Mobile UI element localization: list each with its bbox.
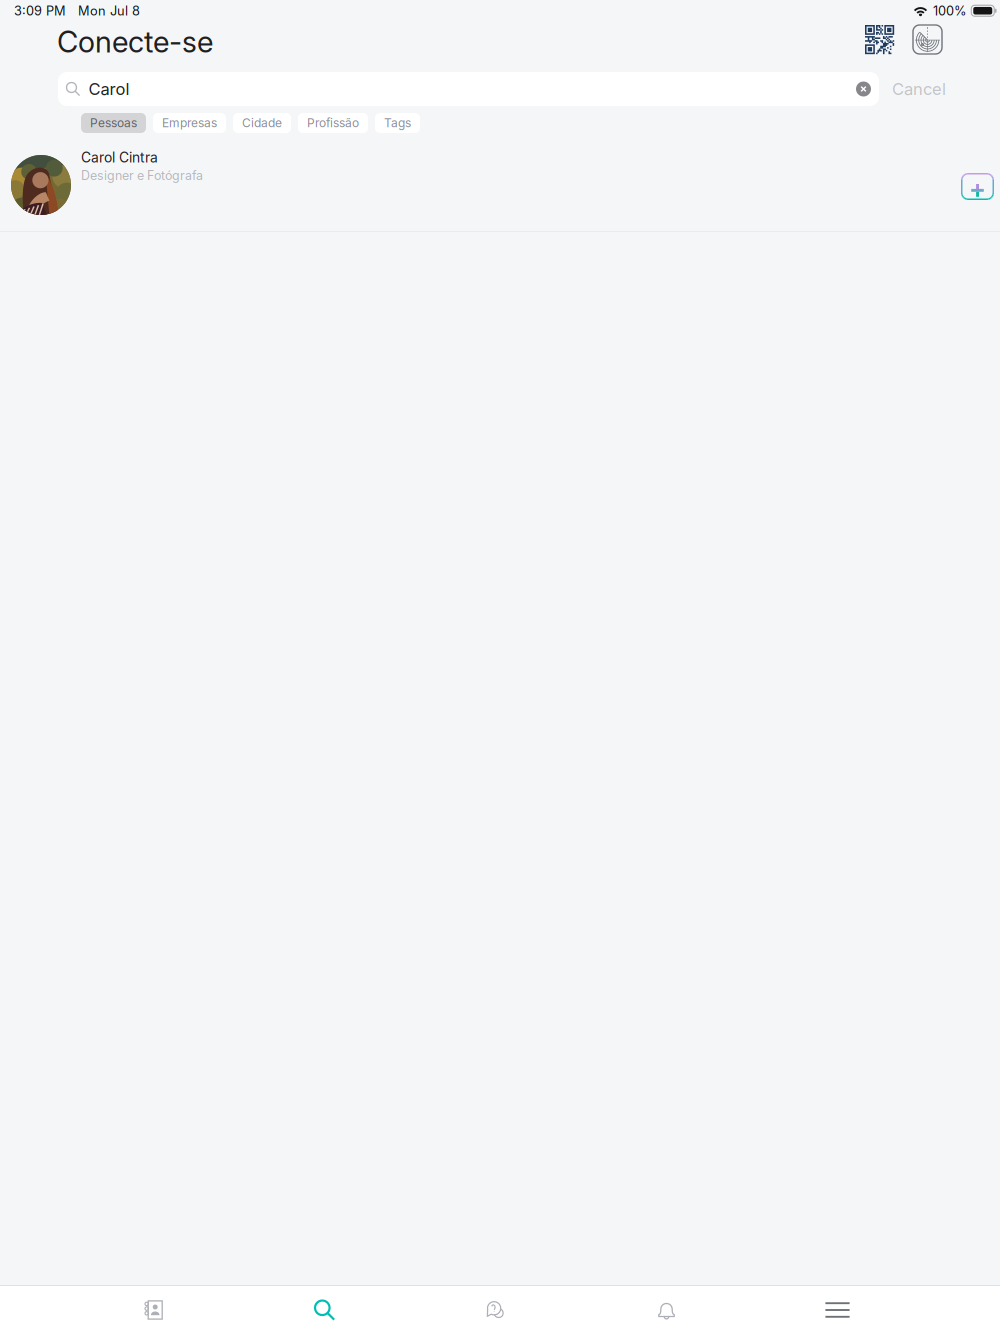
- button[interactable]: Profissão: [298, 113, 368, 133]
- staticText: Carol: [88, 79, 129, 99]
- button[interactable]: Carol Cintra: [0, 141, 1000, 232]
- button[interactable]: Empresas: [153, 113, 226, 133]
- button[interactable]: Tags: [375, 113, 420, 133]
- button[interactable]: Cidade: [233, 113, 291, 133]
- staticText: Empresas: [162, 116, 217, 130]
- staticText: Carol Cintra: [81, 149, 158, 166]
- button[interactable]: Add Carol Cintra: [961, 173, 994, 200]
- button[interactable]: Scan QR code: [865, 25, 894, 54]
- button[interactable]: Pessoas: [81, 113, 146, 133]
- staticText: Conecte-se: [57, 24, 213, 59]
- staticText: 100%: [933, 3, 967, 18]
- button[interactable]: Find people nearby: [913, 25, 942, 54]
- button[interactable]: Notifications: [581, 1286, 752, 1334]
- staticText: Cancel: [892, 79, 946, 99]
- staticText: Cidade: [242, 116, 282, 130]
- button[interactable]: Search: [239, 1286, 410, 1334]
- button[interactable]: Help: [410, 1286, 581, 1334]
- staticText: Designer e Fotógrafa: [81, 168, 203, 183]
- button[interactable]: Contacts: [68, 1286, 239, 1334]
- staticText: 3:09 PM: [14, 3, 66, 18]
- staticText: Pessoas: [90, 116, 137, 130]
- staticText: Mon Jul 8: [78, 3, 140, 18]
- staticText: Profissão: [307, 116, 359, 130]
- button[interactable]: Menu: [752, 1286, 923, 1334]
- button[interactable]: Cancel: [887, 72, 951, 106]
- staticText: Tags: [384, 116, 411, 130]
